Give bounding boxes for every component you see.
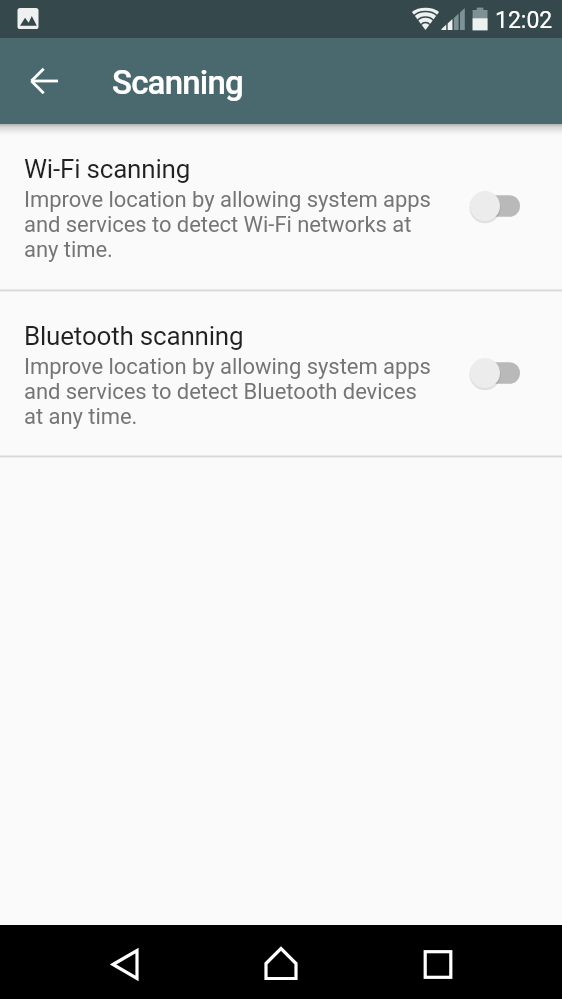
button[interactable]: Wi-Fi scanning (0, 124, 562, 290)
button[interactable]: Navigate up (17, 52, 75, 110)
staticText: 12:02 (495, 7, 553, 34)
staticText: Wi-Fi scanning (24, 154, 191, 184)
button[interactable]: Home (242, 925, 320, 999)
staticText: Scanning (112, 63, 243, 102)
staticText: Improve location by allowing system apps (24, 187, 431, 213)
button[interactable]: Bluetooth scanning (0, 291, 562, 456)
staticText: and services to detect Wi-Fi networks at (24, 212, 412, 238)
staticText: any time. (24, 237, 113, 263)
staticText: Bluetooth scanning (24, 321, 244, 351)
staticText: at any time. (24, 404, 138, 430)
staticText: and services to detect Bluetooth devices (24, 379, 417, 405)
button[interactable]: Recent apps (399, 925, 477, 999)
button[interactable]: Toggle scanning (463, 190, 527, 222)
button[interactable]: Toggle scanning (463, 357, 527, 389)
button[interactable]: Back (86, 925, 164, 999)
staticText: Improve location by allowing system apps (24, 354, 431, 380)
